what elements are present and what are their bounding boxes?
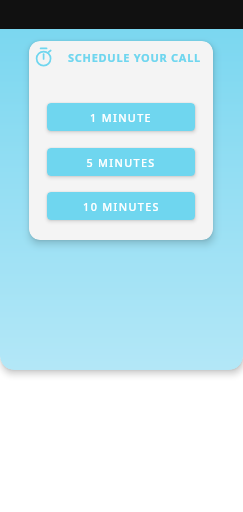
staticText: 1 MINUTE	[90, 110, 152, 125]
button[interactable]: 1 MINUTE	[47, 103, 195, 131]
button[interactable]: 5 MINUTES	[47, 148, 195, 176]
button[interactable]: 10 MINUTES	[47, 192, 195, 220]
staticText: 5 MINUTES	[86, 155, 156, 170]
other: Timer	[36, 47, 52, 67]
staticText: SCHEDULE YOUR CALL	[68, 50, 201, 65]
staticText: 10 MINUTES	[83, 199, 160, 214]
